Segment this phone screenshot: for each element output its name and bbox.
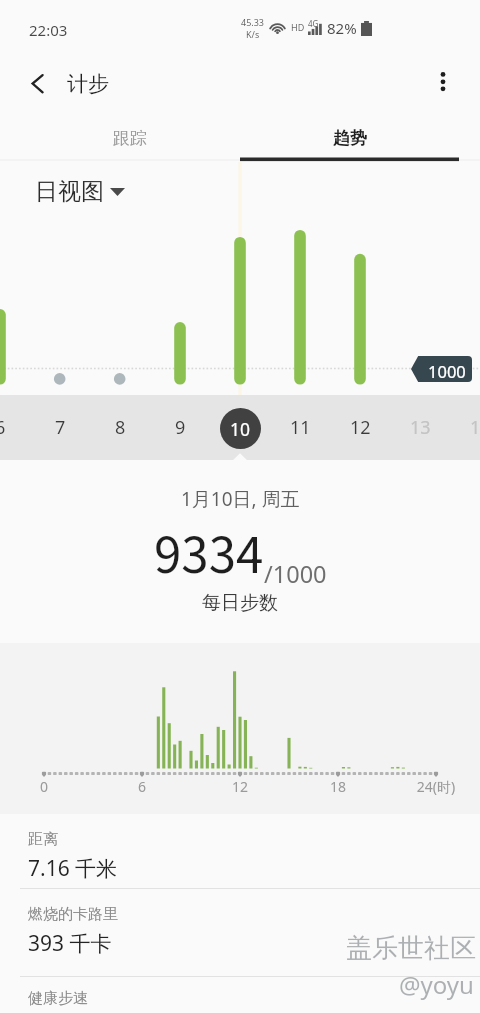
staticText: 跟踪 bbox=[113, 128, 147, 149]
button[interactable]: 7 bbox=[30, 395, 90, 460]
staticText: 9334 bbox=[154, 517, 264, 595]
staticText: 盖乐世社区 bbox=[346, 932, 476, 965]
staticText: 18 bbox=[298, 777, 378, 796]
staticText: 0 bbox=[4, 777, 84, 796]
staticText: 7.16 千米 bbox=[28, 854, 118, 883]
staticText: 1000 bbox=[428, 360, 466, 382]
staticText: 8 bbox=[115, 415, 126, 440]
button[interactable]: Back bbox=[19, 63, 61, 105]
staticText: 6 bbox=[102, 777, 182, 796]
button[interactable]: 8 bbox=[90, 395, 150, 460]
staticText: 6 bbox=[0, 415, 6, 440]
button[interactable]: 健康步速 bbox=[0, 977, 480, 1013]
staticText: HD bbox=[291, 21, 305, 33]
staticText: 22:03 bbox=[29, 20, 68, 40]
button[interactable]: 12 bbox=[330, 395, 390, 460]
button[interactable]: More options bbox=[422, 61, 464, 103]
staticText: 45.33 bbox=[241, 16, 265, 28]
staticText: 距离 bbox=[28, 830, 58, 849]
staticText: /1000 bbox=[264, 558, 327, 590]
button[interactable]: 趋势 bbox=[240, 116, 460, 161]
staticText: 11 bbox=[290, 415, 311, 440]
button[interactable]: 燃烧的卡路里 bbox=[0, 889, 480, 976]
button[interactable]: 11 bbox=[270, 395, 330, 460]
staticText: 10 bbox=[230, 417, 251, 441]
button[interactable]: 14 bbox=[450, 395, 480, 460]
button[interactable]: 跟踪 bbox=[20, 116, 240, 161]
staticText: 4G bbox=[308, 18, 319, 29]
staticText: 每日步数 bbox=[202, 591, 278, 615]
staticText: 1月10日, 周五 bbox=[181, 486, 300, 512]
staticText: 趋势 bbox=[333, 128, 367, 149]
staticText: 12 bbox=[200, 777, 280, 796]
staticText: 393 千卡 bbox=[28, 929, 112, 958]
staticText: 9 bbox=[175, 415, 186, 440]
staticText: 燃烧的卡路里 bbox=[28, 905, 118, 924]
staticText: 82% bbox=[327, 18, 357, 38]
staticText: 13 bbox=[410, 415, 431, 440]
staticText: 24(时) bbox=[396, 777, 476, 796]
staticText: 14 bbox=[470, 415, 480, 440]
staticText: @yoyu bbox=[399, 968, 474, 1001]
button[interactable]: 9 bbox=[150, 395, 210, 460]
button[interactable]: 13 bbox=[390, 395, 450, 460]
staticText: 7 bbox=[55, 415, 66, 440]
staticText: 日视图 bbox=[35, 177, 104, 206]
staticText: 计步 bbox=[67, 71, 109, 97]
button[interactable]: 日视图 bbox=[35, 177, 125, 206]
button[interactable]: 6 bbox=[0, 395, 30, 460]
button[interactable]: 10 bbox=[220, 408, 261, 449]
staticText: 12 bbox=[350, 415, 371, 440]
staticText: 健康步速 bbox=[28, 989, 88, 1008]
staticText: K/s bbox=[246, 28, 260, 40]
button[interactable]: 距离 bbox=[0, 814, 480, 889]
